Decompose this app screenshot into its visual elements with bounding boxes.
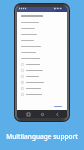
button[interactable]	[17, 73, 67, 79]
button[interactable]	[17, 19, 67, 25]
button[interactable]	[17, 67, 67, 73]
button[interactable]	[17, 43, 67, 49]
button[interactable]	[53, 105, 63, 108]
button[interactable]	[17, 25, 67, 31]
button[interactable]: Home	[38, 110, 46, 118]
button[interactable]	[17, 79, 67, 85]
button[interactable]	[17, 37, 67, 43]
button[interactable]	[17, 49, 67, 55]
button[interactable]	[17, 31, 67, 37]
staticText: Multilanguage support	[6, 132, 78, 141]
button[interactable]	[17, 91, 67, 97]
button[interactable]: Recent apps	[24, 110, 32, 118]
button[interactable]: Back	[53, 110, 61, 118]
button[interactable]	[17, 55, 67, 61]
button[interactable]	[17, 85, 67, 91]
button[interactable]	[17, 61, 67, 67]
